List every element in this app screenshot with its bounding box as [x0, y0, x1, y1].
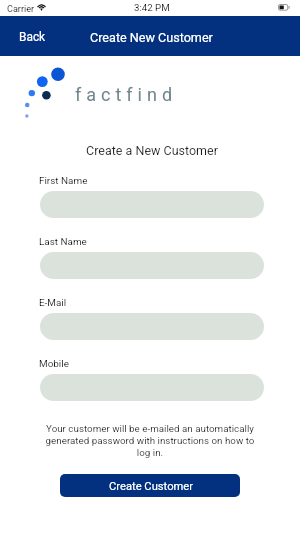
- staticText: Create New Customer: [90, 30, 213, 45]
- staticText: Create a New Customer: [2, 143, 300, 158]
- staticText: Carrier: [7, 4, 35, 15]
- button[interactable]: Back: [0, 22, 60, 52]
- staticText: Last Name: [39, 236, 87, 248]
- button[interactable]: E-Mail: [40, 313, 264, 340]
- staticText: Your customer will be e-mailed an automa…: [43, 423, 257, 459]
- staticText: E-Mail: [39, 297, 67, 309]
- staticText: First Name: [39, 175, 88, 187]
- staticText: Back: [19, 30, 46, 44]
- button[interactable]: Create Customer: [60, 474, 240, 497]
- button[interactable]: Mobile: [40, 374, 264, 401]
- staticText: Create Customer: [109, 480, 194, 493]
- staticText: Mobile: [39, 358, 69, 370]
- button[interactable]: First Name: [40, 191, 264, 218]
- staticText: 3:42 PM: [134, 2, 170, 13]
- button[interactable]: Last Name: [40, 252, 264, 279]
- staticText: factfind: [75, 84, 178, 105]
